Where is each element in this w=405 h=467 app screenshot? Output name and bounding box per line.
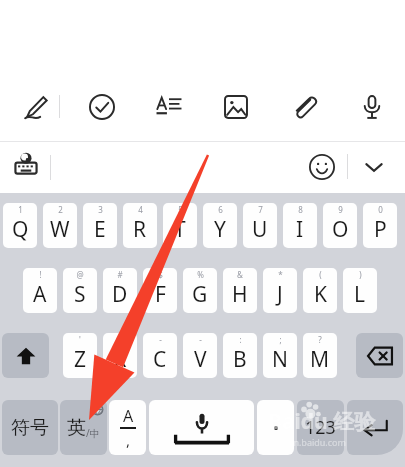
staticText: F xyxy=(155,280,166,309)
button[interactable]: Text format xyxy=(146,78,191,135)
button[interactable]: ! xyxy=(23,268,57,313)
button[interactable]: $ xyxy=(143,268,177,313)
staticText: /中 xyxy=(86,426,100,440)
button[interactable]: 4 xyxy=(123,203,157,248)
button[interactable]: Hide keyboard xyxy=(351,144,397,190)
staticText: ( xyxy=(319,269,322,280)
button[interactable]: 2 xyxy=(43,203,77,248)
button[interactable]: Emoji xyxy=(299,144,345,190)
staticText: % xyxy=(197,269,204,280)
staticText: X xyxy=(114,345,127,374)
staticText: Z xyxy=(74,345,87,374)
staticText: ) xyxy=(359,269,362,280)
staticText: jingyan.baidu.com xyxy=(268,436,346,448)
staticText: M xyxy=(310,345,330,374)
staticText: ' xyxy=(79,334,81,345)
button[interactable]: Voice xyxy=(349,78,394,135)
staticText: J xyxy=(277,280,283,309)
staticText: G xyxy=(192,280,208,309)
button[interactable]: 6 xyxy=(203,203,237,248)
staticText: P xyxy=(374,215,387,244)
staticText: * xyxy=(278,269,283,280)
staticText: 8 xyxy=(298,204,303,215)
staticText: # xyxy=(117,269,123,280)
button[interactable]: X xyxy=(103,333,137,378)
button[interactable]: Space xyxy=(149,400,254,455)
staticText: 2 xyxy=(58,204,63,215)
button[interactable]: 5 xyxy=(163,203,197,248)
button[interactable]: Switch to symbols A comma xyxy=(109,400,146,455)
staticText: 符号 xyxy=(11,416,49,440)
staticText: A xyxy=(123,405,134,427)
button[interactable]: ? xyxy=(303,333,337,378)
button[interactable]: Backspace xyxy=(356,333,403,378)
button[interactable]: 0 xyxy=(363,203,397,248)
staticText: ; xyxy=(279,334,282,345)
button[interactable]: @ xyxy=(63,268,97,313)
staticText: Baidu 经验 xyxy=(268,407,376,436)
staticText: - xyxy=(159,334,162,345)
button[interactable]: 1 xyxy=(3,203,37,248)
button[interactable]: ) xyxy=(343,268,377,313)
staticText: 7 xyxy=(258,204,263,215)
staticText: V xyxy=(194,345,207,374)
staticText: T xyxy=(174,215,186,244)
button[interactable]: 123 xyxy=(297,400,344,455)
staticText: E xyxy=(94,215,106,244)
staticText: ! xyxy=(39,269,42,280)
staticText: L xyxy=(354,280,366,309)
staticText: K xyxy=(314,280,327,309)
staticText: 3 xyxy=(98,204,103,215)
staticText: , xyxy=(126,430,131,450)
button[interactable]: * xyxy=(263,268,297,313)
staticText: 0 xyxy=(378,204,383,215)
staticText: 6 xyxy=(218,204,223,215)
button[interactable]: # xyxy=(103,268,137,313)
button[interactable]: Shift xyxy=(2,333,49,378)
button[interactable]: ' xyxy=(63,333,97,378)
button[interactable]: Attach xyxy=(281,78,326,135)
staticText: 1 xyxy=(18,204,23,215)
staticText: : xyxy=(239,334,242,345)
staticText: D xyxy=(112,280,128,309)
staticText: - xyxy=(199,334,202,345)
staticText: Q xyxy=(12,215,29,244)
button[interactable]: & xyxy=(223,268,257,313)
button[interactable]: Period xyxy=(257,400,294,455)
button[interactable]: 9 xyxy=(323,203,357,248)
staticText: @ xyxy=(76,269,84,280)
button[interactable]: ; xyxy=(263,333,297,378)
staticText: A xyxy=(33,280,47,309)
staticText: 5 xyxy=(178,204,183,215)
button[interactable]: 7 xyxy=(243,203,277,248)
staticText: N xyxy=(272,345,288,374)
button[interactable]: - xyxy=(143,333,177,378)
staticText: R xyxy=(133,215,147,244)
staticText: W xyxy=(50,215,70,244)
button[interactable]: 3 xyxy=(83,203,117,248)
staticText: I xyxy=(296,215,304,244)
staticText: & xyxy=(237,269,243,280)
button[interactable]: Switch input language xyxy=(4,142,48,186)
button[interactable]: : xyxy=(223,333,257,378)
staticText: 英 xyxy=(67,416,86,440)
staticText: B xyxy=(233,345,247,374)
button[interactable]: Enter xyxy=(347,400,403,455)
button[interactable]: Handwriting xyxy=(12,78,57,135)
staticText: S xyxy=(74,280,86,309)
button[interactable]: ( xyxy=(303,268,337,313)
button[interactable]: Image xyxy=(213,78,258,135)
button[interactable]: Confirm xyxy=(79,78,124,135)
staticText: $ xyxy=(158,269,163,280)
staticText: H xyxy=(232,280,248,309)
staticText: ? xyxy=(318,334,322,345)
staticText: Y xyxy=(214,215,226,244)
button[interactable]: - xyxy=(183,333,217,378)
button[interactable]: 英 xyxy=(60,400,107,455)
staticText: 4 xyxy=(138,204,143,215)
button[interactable]: % xyxy=(183,268,217,313)
staticText: 9 xyxy=(338,204,343,215)
button[interactable]: 符号 xyxy=(2,400,58,455)
button[interactable]: 8 xyxy=(283,203,317,248)
staticText: O xyxy=(332,215,349,244)
